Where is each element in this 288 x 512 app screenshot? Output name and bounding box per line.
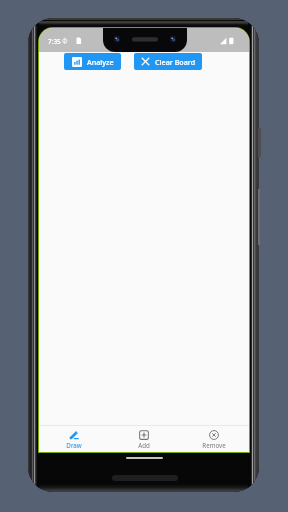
staticText: Add [138, 441, 150, 449]
staticText: Clear Board [155, 57, 196, 67]
button[interactable]: Remove [179, 426, 249, 452]
button[interactable]: Clear Board [134, 53, 202, 70]
staticText: 7:35 [48, 37, 61, 46]
button[interactable]: Add [109, 426, 179, 452]
staticText: Draw [66, 441, 82, 449]
staticText: Analyze [87, 57, 114, 67]
staticText: Remove [202, 441, 226, 449]
button[interactable]: Draw [39, 426, 109, 452]
button[interactable]: Analyze [64, 53, 121, 70]
